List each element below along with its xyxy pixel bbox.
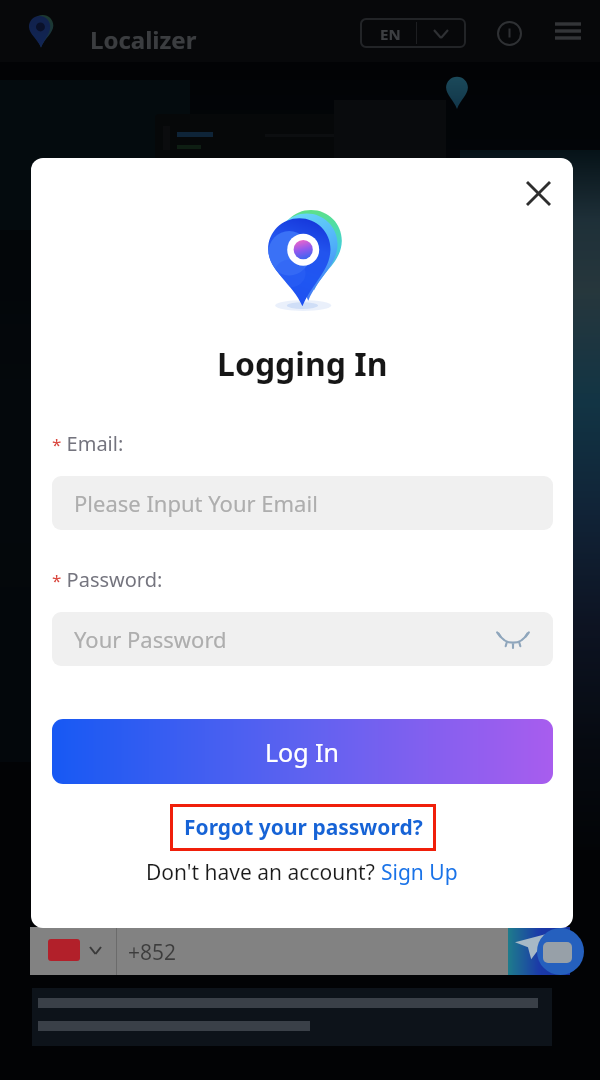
staticText: Please Input Your Email [74, 488, 318, 518]
staticText: * Password: [52, 566, 163, 593]
button[interactable]: Close [516, 171, 561, 216]
button[interactable]: Show password [493, 619, 533, 659]
staticText: Log In [265, 735, 340, 769]
button[interactable]: Log In [52, 719, 553, 784]
staticText: Forgot your password? [184, 813, 423, 842]
button[interactable]: Forgot your password? [170, 804, 436, 851]
staticText: * Email: [52, 430, 124, 457]
staticText: EN [380, 24, 401, 44]
staticText: +852 [128, 938, 177, 967]
staticText: Sign Up [381, 858, 458, 887]
button[interactable]: Your Password [52, 612, 553, 666]
staticText: Logging In [217, 342, 388, 386]
staticText: Localizer [90, 23, 197, 56]
button[interactable]: Please Input Your Email [52, 476, 553, 530]
staticText: Don't have an account? [146, 858, 381, 887]
staticText: Your Password [74, 624, 227, 654]
button[interactable]: Sign Up [381, 858, 458, 887]
